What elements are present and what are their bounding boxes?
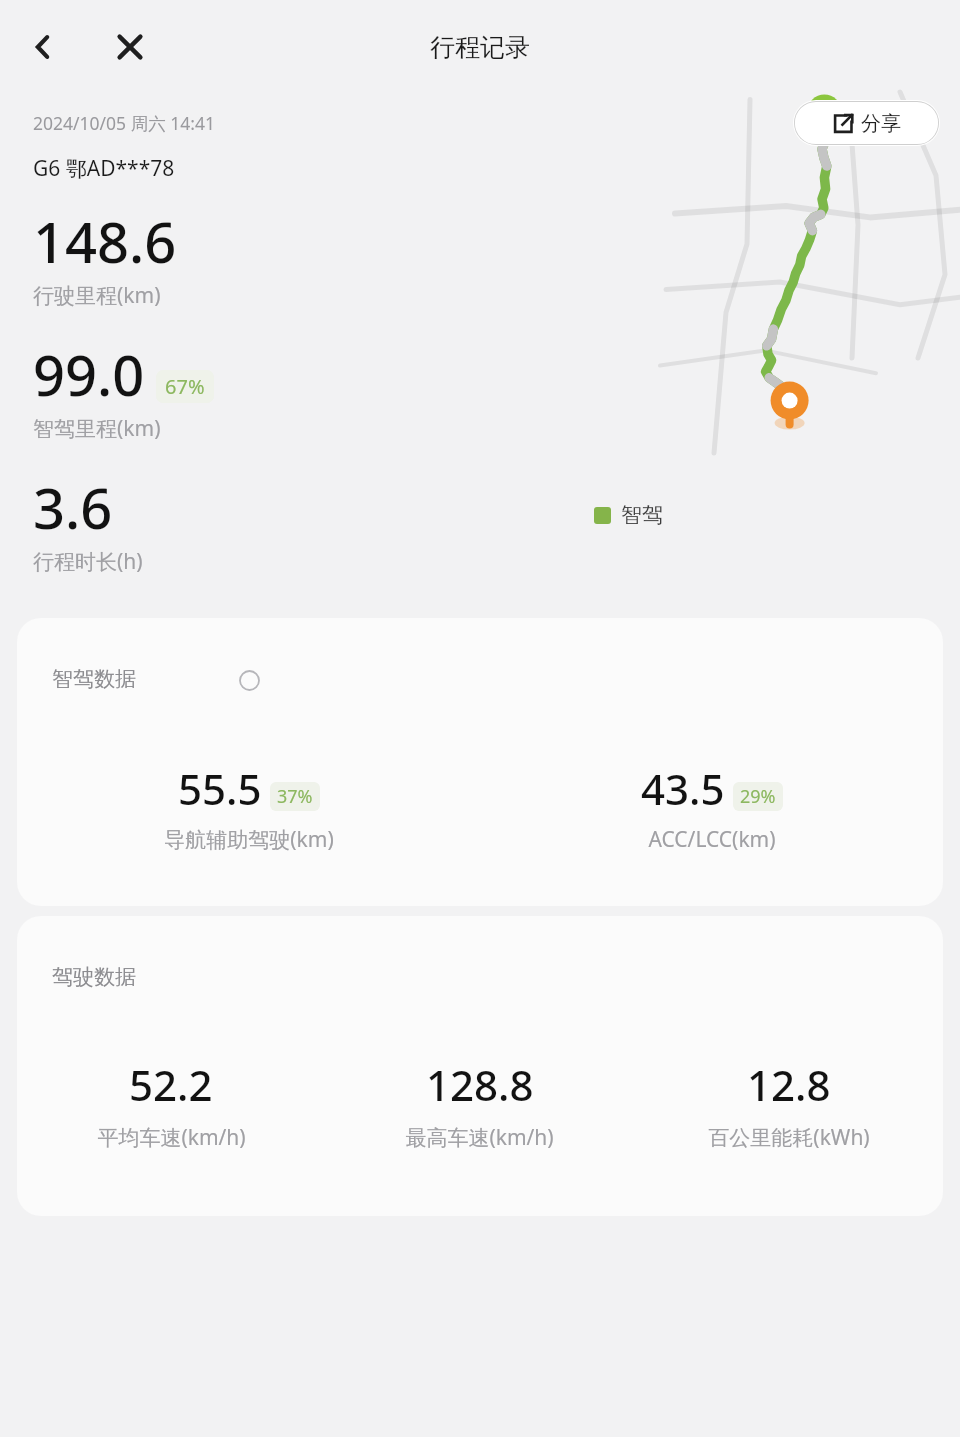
staticText: 智驾数据	[52, 666, 136, 692]
staticText: 行驶里程(km)	[33, 281, 161, 310]
staticText: 驾驶数据	[52, 964, 136, 990]
staticText: G6 鄂AD***78	[33, 154, 175, 183]
staticText: 67%	[165, 373, 205, 400]
staticText: 行程时长(h)	[33, 547, 143, 576]
staticText: 12.8	[747, 1056, 831, 1113]
staticText: 128.8	[426, 1056, 534, 1113]
staticText: 55.5	[178, 760, 262, 817]
button[interactable]: Close	[104, 21, 156, 73]
staticText: 智驾	[621, 502, 663, 528]
staticText: 2024/10/05 周六 14:41	[33, 111, 215, 135]
staticText: 平均车速(km/h)	[97, 1123, 246, 1152]
button[interactable]: Back	[18, 22, 68, 72]
button[interactable]: 分享	[793, 100, 940, 146]
staticText: 智驾里程(km)	[33, 414, 161, 443]
staticText: 29%	[740, 784, 776, 809]
staticText: 3.6	[33, 469, 113, 545]
staticText: 43.5	[641, 760, 725, 817]
staticText: 52.2	[129, 1056, 213, 1113]
staticText: 分享	[861, 111, 901, 136]
staticText: 148.6	[33, 203, 177, 279]
staticText: 37%	[277, 784, 313, 809]
staticText: 最高车速(km/h)	[405, 1123, 554, 1152]
staticText: 行程记录	[430, 32, 530, 63]
staticText: 99.0	[33, 336, 145, 412]
staticText: ACC/LCC(km)	[648, 825, 776, 854]
staticText: 百公里能耗(kWh)	[708, 1123, 870, 1152]
button[interactable]: Info	[239, 670, 260, 691]
staticText: 导航辅助驾驶(km)	[164, 825, 334, 854]
